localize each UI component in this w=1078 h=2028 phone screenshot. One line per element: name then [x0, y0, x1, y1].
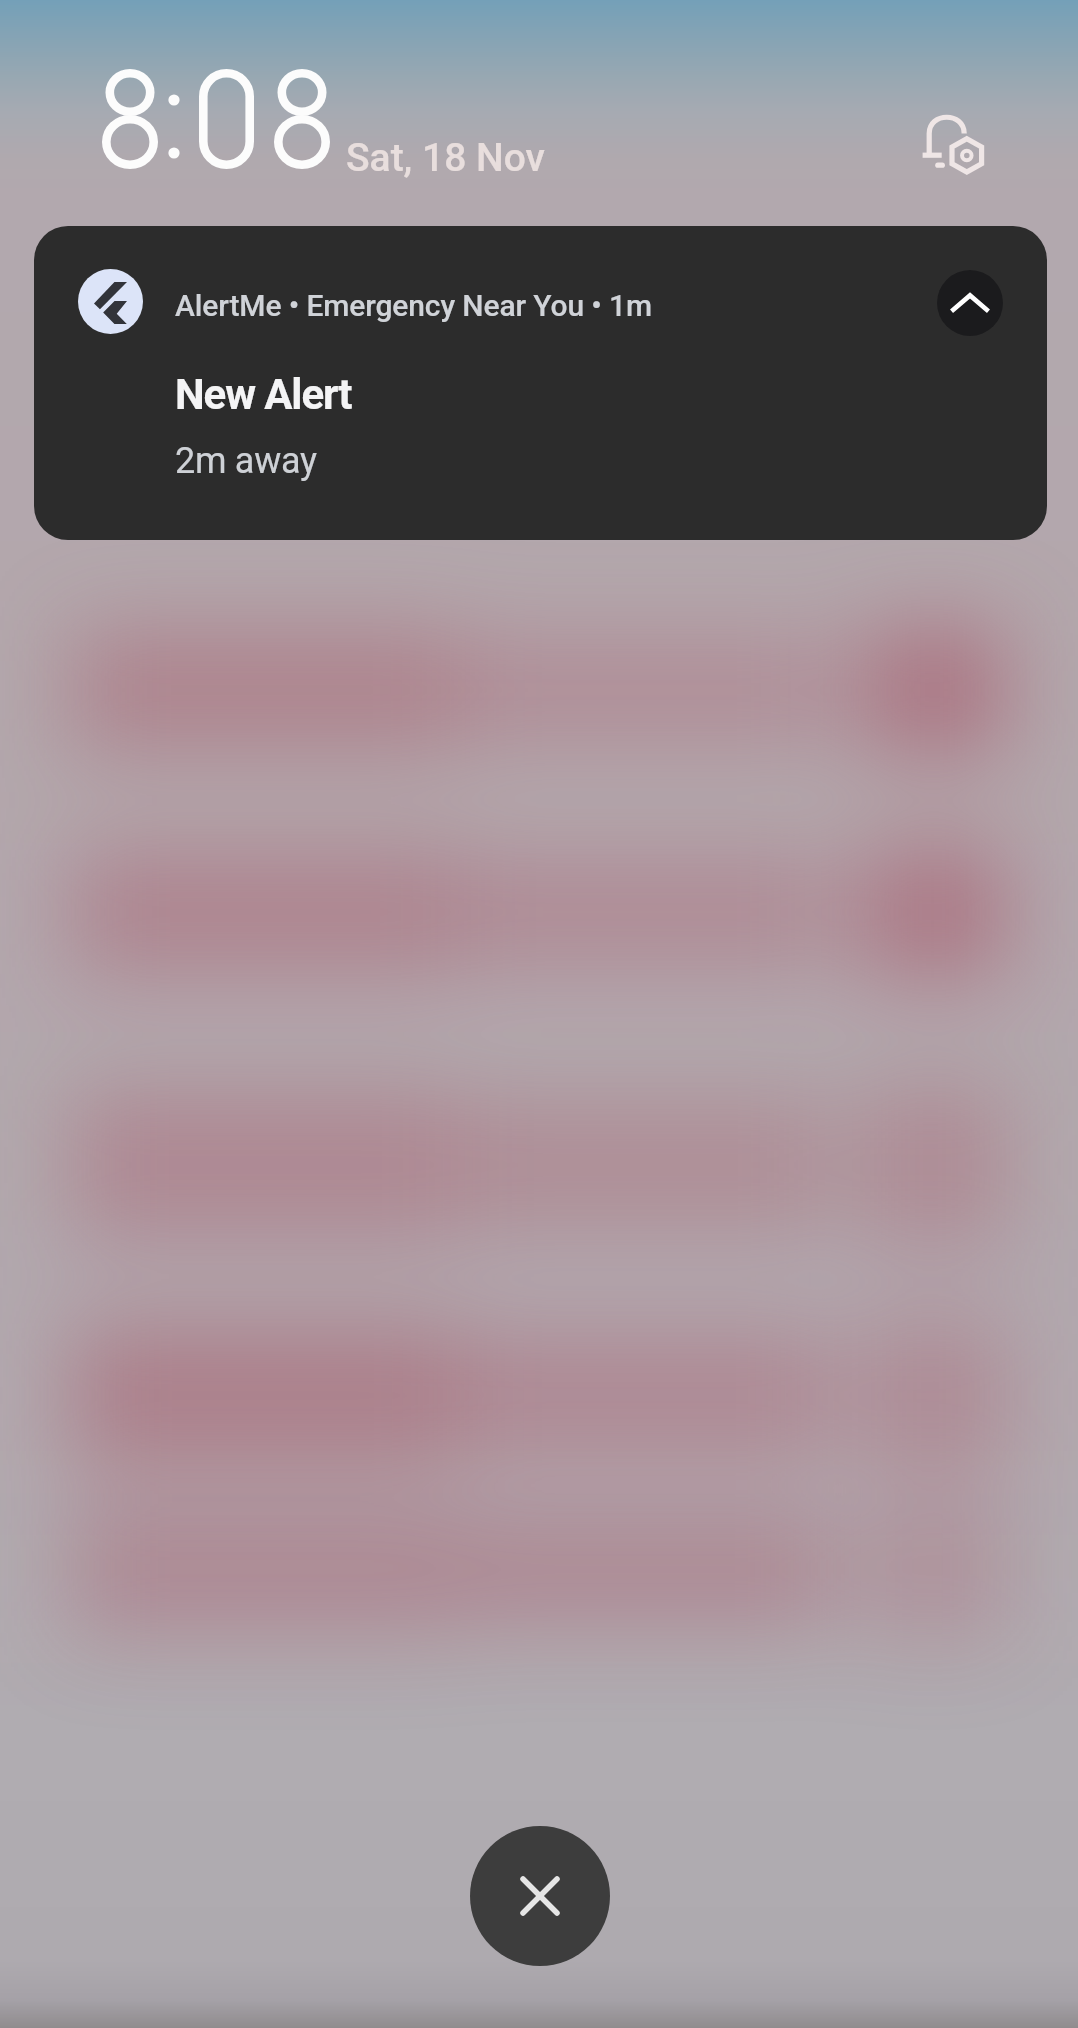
button[interactable]: AlertMe • Emergency Near You • 1m: [34, 226, 1047, 540]
staticText: New Alert: [175, 370, 352, 419]
button[interactable]: Notification settings: [920, 114, 984, 175]
staticText: AlertMe • Emergency Near You • 1m: [175, 288, 652, 323]
button[interactable]: Clear all notifications: [470, 1826, 610, 1966]
staticText: Sat, 18 Nov: [346, 135, 545, 181]
staticText: 2m away: [175, 440, 317, 482]
button[interactable]: Collapse notification: [937, 270, 1003, 336]
